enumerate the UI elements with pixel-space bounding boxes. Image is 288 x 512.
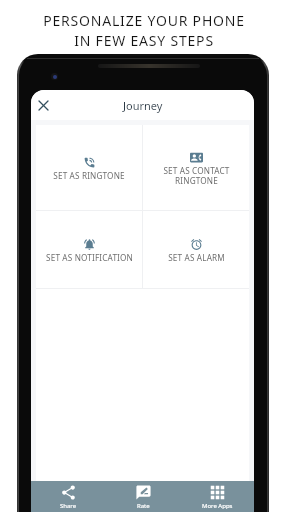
- staticText: Share: [60, 502, 77, 510]
- button[interactable]: Rate: [106, 481, 180, 512]
- staticText: PERSONALIZE YOUR PHONE: [43, 11, 245, 30]
- other: Rate: [135, 484, 152, 501]
- button[interactable]: Close: [33, 95, 53, 115]
- other: More Apps: [209, 484, 226, 501]
- other: Share: [60, 484, 77, 501]
- button[interactable]: Share: [31, 481, 106, 512]
- staticText: SET AS ALARM: [168, 252, 225, 263]
- staticText: Journey: [123, 98, 163, 113]
- button[interactable]: SET AS CONTACT RINGTONE: [143, 125, 249, 210]
- staticText: More Apps: [202, 502, 233, 510]
- staticText: SET AS RINGTONE: [53, 170, 125, 181]
- staticText: Rate: [137, 502, 150, 510]
- staticText: SET AS NOTIFICATION: [46, 252, 133, 263]
- staticText: IN FEW EASY STEPS: [74, 31, 214, 50]
- button[interactable]: More Apps: [180, 481, 254, 512]
- button[interactable]: SET AS RINGTONE: [36, 125, 142, 210]
- staticText: SET AS CONTACT RINGTONE: [163, 165, 230, 186]
- button[interactable]: SET AS NOTIFICATION: [36, 211, 142, 288]
- button[interactable]: SET AS ALARM: [143, 211, 249, 288]
